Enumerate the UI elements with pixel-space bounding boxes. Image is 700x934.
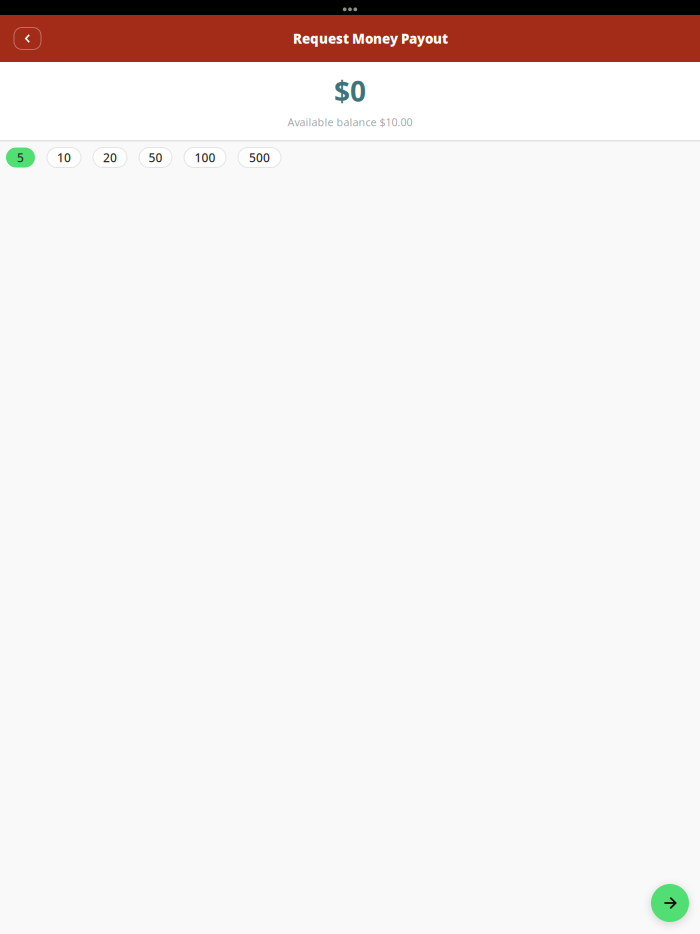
- staticText: 5: [17, 149, 24, 165]
- button[interactable]: 20: [93, 147, 127, 167]
- button[interactable]: 50: [139, 147, 172, 167]
- button[interactable]: 100: [184, 147, 226, 167]
- staticText: 50: [148, 149, 162, 165]
- staticText: 500: [249, 149, 270, 165]
- staticText: 10: [57, 149, 71, 165]
- staticText: $0: [334, 72, 366, 110]
- button[interactable]: Continue: [651, 884, 689, 922]
- button[interactable]: 5: [6, 147, 35, 167]
- staticText: Request Money Payout: [293, 30, 448, 47]
- button[interactable]: Back: [14, 27, 41, 49]
- button[interactable]: 500: [238, 147, 281, 167]
- staticText: 20: [103, 149, 117, 165]
- staticText: 100: [194, 149, 215, 165]
- staticText: Available balance $10.00: [287, 115, 412, 129]
- button[interactable]: 10: [47, 147, 81, 167]
